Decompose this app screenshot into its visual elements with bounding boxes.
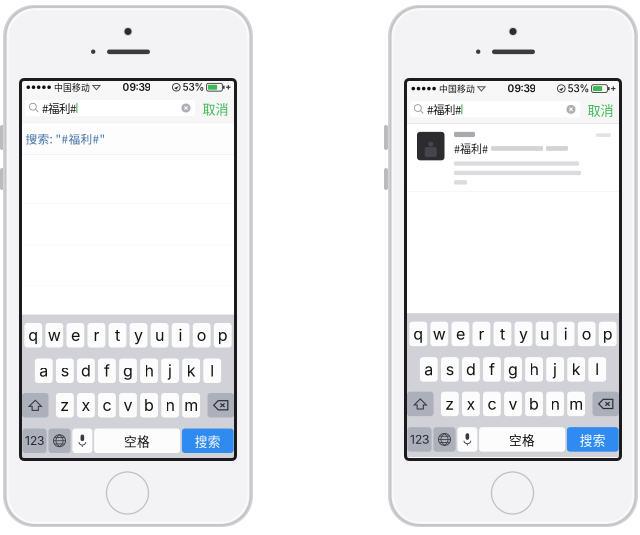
button[interactable]: Delete: [207, 393, 234, 417]
button[interactable]: h: [525, 357, 543, 382]
button[interactable]: w: [430, 322, 448, 346]
staticText: k: [572, 360, 581, 379]
button[interactable]: t: [109, 323, 126, 347]
button[interactable]: g: [119, 358, 137, 383]
button[interactable]: t: [494, 322, 511, 346]
button[interactable]: l: [588, 357, 606, 382]
button[interactable]: a: [35, 358, 53, 383]
button[interactable]: g: [504, 357, 522, 382]
button[interactable]: Switch keyboard: [433, 427, 456, 452]
staticText: x: [81, 396, 90, 415]
button[interactable]: 空格: [479, 427, 565, 452]
button[interactable]: Dictation: [72, 428, 92, 453]
button[interactable]: c: [483, 392, 501, 416]
button[interactable]: m: [182, 393, 200, 417]
button[interactable]: b: [140, 393, 158, 417]
staticText: p: [218, 326, 228, 345]
button[interactable]: p: [214, 323, 232, 347]
button[interactable]: 搜索: [182, 428, 234, 453]
staticText: 取消: [202, 98, 228, 117]
button[interactable]: k: [182, 358, 200, 383]
button[interactable]: e: [66, 323, 84, 347]
staticText: q: [28, 326, 38, 345]
staticText: c: [102, 396, 111, 415]
staticText: 空格: [124, 432, 150, 450]
button[interactable]: Shift: [22, 393, 48, 417]
button[interactable]: i: [172, 323, 189, 347]
staticText: #福利#: [454, 140, 488, 156]
button[interactable]: s: [441, 357, 459, 382]
button[interactable]: s: [56, 358, 74, 383]
button[interactable]: 搜索: [567, 427, 619, 452]
button[interactable]: z: [56, 393, 74, 417]
button[interactable]: h: [140, 358, 158, 383]
button[interactable]: l: [203, 358, 221, 383]
button[interactable]: Clear text: [566, 105, 575, 114]
button[interactable]: w: [45, 323, 63, 347]
button[interactable]: y: [130, 323, 147, 347]
staticText: o: [197, 326, 207, 345]
button[interactable]: j: [161, 358, 179, 383]
button[interactable]: u: [151, 323, 168, 347]
button[interactable]: n: [546, 392, 564, 416]
button[interactable]: p: [599, 322, 617, 346]
button[interactable]: d: [77, 358, 95, 383]
button[interactable]: 取消: [199, 98, 231, 118]
button[interactable]: Clear text: [181, 103, 190, 112]
button[interactable]: 取消: [584, 99, 616, 119]
button[interactable]: u: [536, 322, 553, 346]
staticText: g: [123, 361, 133, 380]
button[interactable]: 搜索: "#福利#": [22, 122, 234, 154]
staticText: s: [61, 361, 69, 380]
staticText: w: [48, 326, 61, 345]
staticText: 53%: [568, 83, 590, 94]
button[interactable]: 空格: [94, 428, 180, 453]
button[interactable]: m: [567, 392, 585, 416]
button[interactable]: q: [24, 323, 42, 347]
button[interactable]: o: [193, 323, 211, 347]
button[interactable]: q: [409, 322, 427, 346]
button[interactable]: j: [546, 357, 564, 382]
staticText: 123: [25, 433, 44, 448]
button[interactable]: 123: [407, 427, 432, 452]
staticText: s: [446, 360, 454, 379]
button[interactable]: v: [504, 392, 522, 416]
button[interactable]: y: [515, 322, 532, 346]
button[interactable]: x: [77, 393, 95, 417]
staticText: t: [115, 326, 120, 345]
staticText: 搜索: [195, 432, 221, 450]
staticText: g: [508, 360, 518, 379]
button[interactable]: Switch keyboard: [48, 428, 71, 453]
staticText: p: [603, 324, 613, 344]
button[interactable]: d: [462, 357, 480, 382]
button[interactable]: i: [557, 322, 574, 346]
staticText: v: [123, 396, 132, 415]
button[interactable]: f: [483, 357, 501, 382]
staticText: n: [551, 394, 560, 414]
button[interactable]: Delete: [592, 392, 619, 416]
button[interactable]: o: [578, 322, 596, 346]
button[interactable]: 123: [22, 428, 47, 453]
staticText: 取消: [587, 100, 613, 119]
staticText: h: [144, 361, 153, 380]
staticText: d: [466, 360, 476, 379]
button[interactable]: a: [420, 357, 438, 382]
button[interactable]: #福利#: [407, 124, 619, 191]
staticText: 123: [410, 432, 429, 447]
button[interactable]: r: [472, 322, 490, 346]
button[interactable]: n: [161, 393, 179, 417]
staticText: b: [144, 396, 154, 415]
button[interactable]: z: [441, 392, 459, 416]
staticText: 搜索: [580, 430, 606, 448]
button[interactable]: b: [525, 392, 543, 416]
button[interactable]: x: [462, 392, 480, 416]
button[interactable]: r: [87, 323, 105, 347]
button[interactable]: Shift: [407, 392, 433, 416]
button[interactable]: Dictation: [457, 427, 477, 452]
button[interactable]: e: [451, 322, 469, 346]
button[interactable]: c: [98, 393, 116, 417]
staticText: 空格: [509, 430, 535, 448]
button[interactable]: f: [98, 358, 116, 383]
button[interactable]: k: [567, 357, 585, 382]
button[interactable]: v: [119, 393, 137, 417]
